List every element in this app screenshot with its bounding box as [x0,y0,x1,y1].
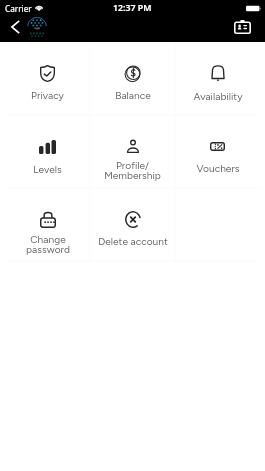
staticText: Change password [26,233,70,256]
button[interactable]: Vouchers [175,115,260,188]
button[interactable]: Availability [175,42,260,115]
button[interactable]: Back [3,15,27,39]
staticText: Privacy [31,89,64,101]
button[interactable]: Membership card [232,17,252,37]
button[interactable]: Levels [5,115,90,188]
button[interactable]: Privacy [5,42,90,115]
staticText: Levels [33,163,62,175]
staticText: Availability [193,90,243,102]
staticText: 12:37 PM [113,2,152,14]
button[interactable]: Change password [5,188,90,261]
staticText: Delete account [98,235,168,247]
staticText: Carrier [5,3,32,14]
button[interactable]: Balance [90,42,175,115]
button[interactable]: Delete account [90,188,175,261]
button[interactable]: Profile/ Membership [90,115,175,188]
staticText: Profile/ Membership [104,159,161,182]
staticText: Balance [115,89,151,101]
staticText: Vouchers [196,162,240,174]
